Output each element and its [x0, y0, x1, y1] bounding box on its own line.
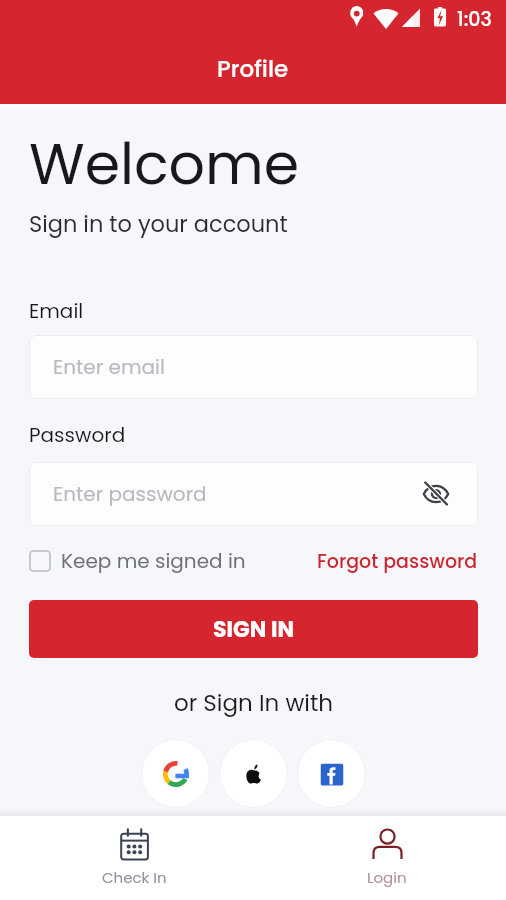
staticText: Login: [367, 867, 407, 888]
button[interactable]: SIGN IN: [29, 600, 478, 658]
staticText: Enter email: [53, 353, 165, 381]
staticText: SIGN IN: [213, 614, 295, 645]
button[interactable]: Forgot password: [317, 548, 478, 575]
button[interactable]: Sign in with Apple: [219, 739, 288, 808]
staticText: Welcome: [29, 124, 300, 204]
button[interactable]: Sign in with Google: [141, 739, 210, 808]
staticText: Password: [29, 421, 126, 449]
staticText: Profile: [217, 53, 289, 85]
staticText: Email: [29, 297, 84, 325]
staticText: Sign in to your account: [29, 208, 288, 239]
staticText: Check In: [102, 867, 167, 888]
button[interactable]: Login: [327, 816, 447, 900]
staticText: Keep me signed in: [61, 547, 246, 575]
button[interactable]: Check In: [74, 816, 194, 900]
staticText: Enter password: [53, 480, 417, 508]
staticText: or Sign In with: [29, 687, 478, 719]
button[interactable]: Show password: [417, 475, 455, 513]
button[interactable]: Keep me signed in: [29, 547, 246, 575]
staticText: 1:03: [457, 6, 492, 33]
button[interactable]: Sign in with Facebook: [297, 739, 366, 808]
